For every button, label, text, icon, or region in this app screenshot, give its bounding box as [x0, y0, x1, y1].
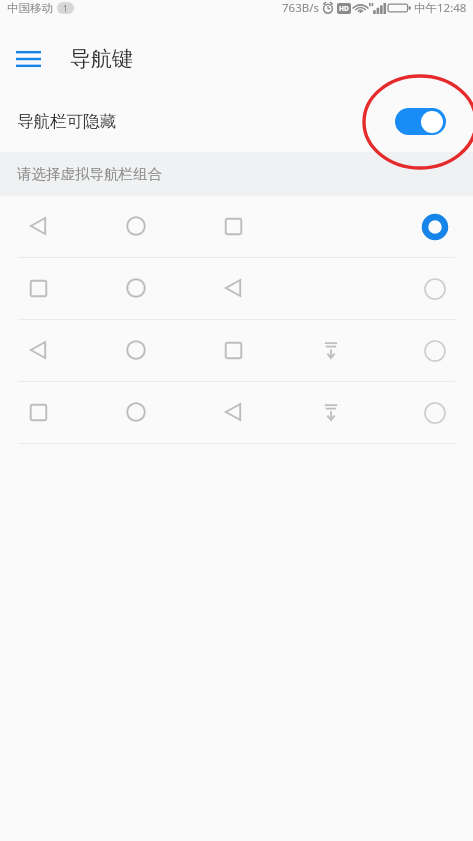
- button[interactable]: [0, 382, 473, 444]
- button[interactable]: [0, 258, 473, 320]
- staticText: 中午12:48: [414, 0, 467, 16]
- staticText: 导航栏可隐藏: [17, 111, 116, 132]
- button[interactable]: [0, 320, 473, 382]
- staticText: 中国移动: [7, 1, 53, 15]
- staticText: 导航键: [70, 46, 133, 72]
- button[interactable]: [0, 196, 473, 258]
- staticText: HD: [339, 4, 349, 13]
- staticText: 请选择虚拟导航栏组合: [17, 165, 162, 183]
- staticText: 1: [63, 3, 68, 14]
- button[interactable]: Menu: [0, 31, 56, 87]
- button[interactable]: 导航栏可隐藏: [0, 90, 473, 152]
- staticText: 763B/s: [282, 0, 319, 16]
